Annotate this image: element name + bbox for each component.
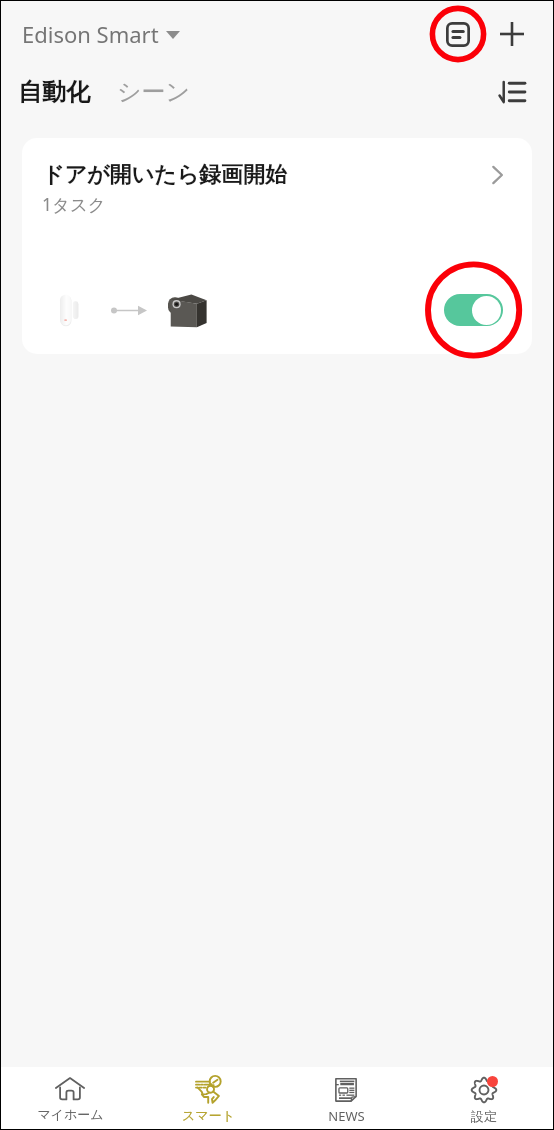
button[interactable]: Open details xyxy=(480,158,514,192)
staticText: シーン xyxy=(117,77,191,107)
staticText: ドアが開いたら録画開始 xyxy=(42,161,288,189)
button[interactable]: NEWS xyxy=(277,1067,415,1129)
button[interactable]: Sort xyxy=(488,68,536,116)
staticText: 設定 xyxy=(471,1108,497,1124)
button[interactable]: スマート xyxy=(139,1067,277,1129)
staticText: マイホーム xyxy=(37,1106,104,1122)
button[interactable]: ドアが開いたら録画開始 xyxy=(22,138,532,354)
staticText: 自動化 xyxy=(18,77,90,107)
button[interactable]: 設定 xyxy=(415,1067,553,1129)
button[interactable]: Edison Smart xyxy=(14,13,188,55)
staticText: 1タスク xyxy=(42,192,106,216)
button[interactable]: Automation log xyxy=(426,2,490,66)
button[interactable]: シーン xyxy=(107,69,201,115)
staticText: Edison Smart xyxy=(22,19,159,49)
button[interactable]: マイホーム xyxy=(1,1067,139,1129)
staticText: NEWS xyxy=(328,1107,365,1125)
button[interactable]: Enable automation xyxy=(444,294,503,326)
button[interactable]: Add automation xyxy=(486,8,538,60)
staticText: スマート xyxy=(182,1107,235,1123)
button[interactable]: 自動化 xyxy=(8,69,100,115)
